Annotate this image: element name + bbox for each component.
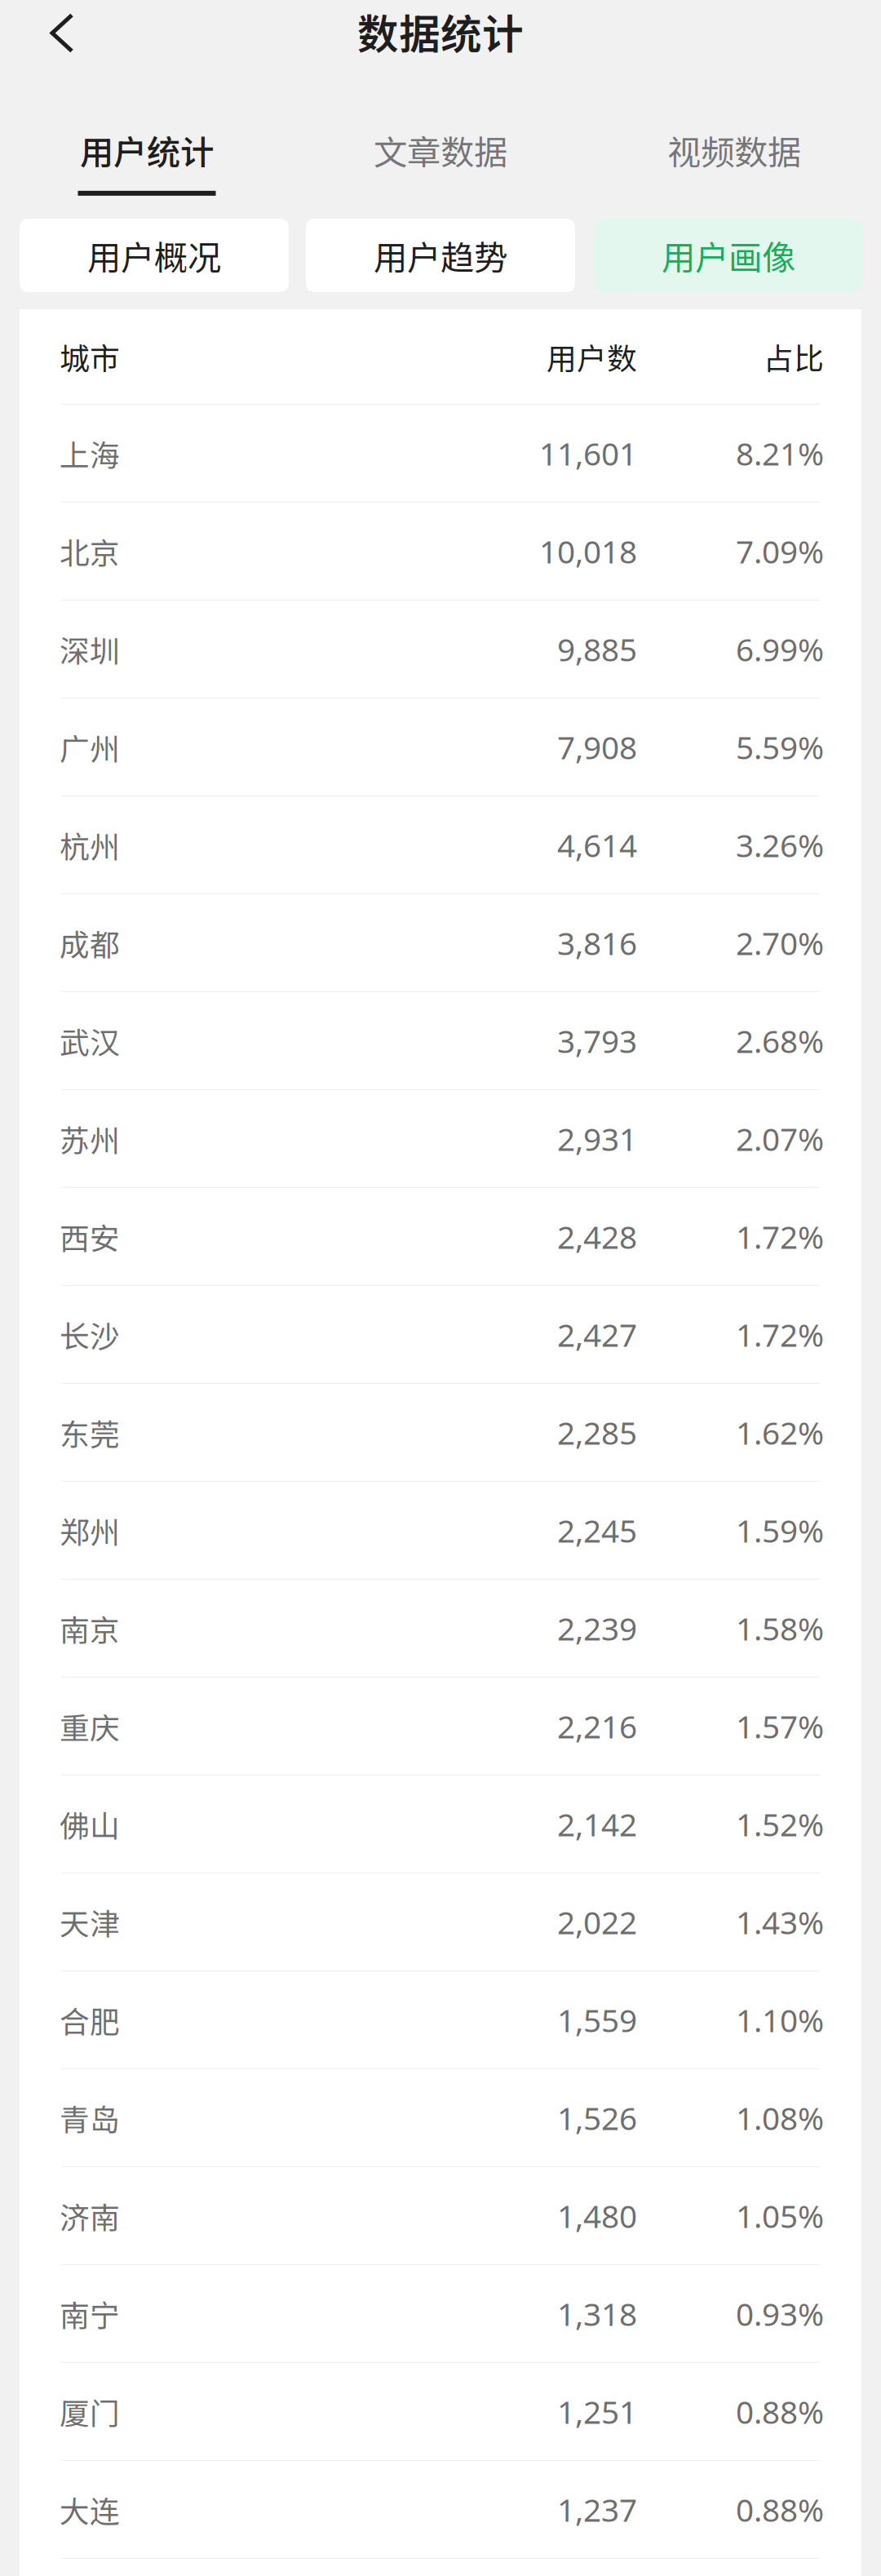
staticText: 济南	[60, 2194, 120, 2237]
button[interactable]: 视频数据	[587, 66, 881, 197]
staticText: 3.26%	[736, 823, 824, 866]
staticText: 1.57%	[736, 1705, 824, 1748]
staticText: 2,285	[557, 1411, 637, 1454]
staticText: 2,216	[557, 1705, 637, 1748]
staticText: 1.10%	[736, 1998, 824, 2041]
staticText: 1,251	[557, 2390, 637, 2433]
staticText: 文章数据	[374, 126, 507, 175]
staticText: 10,018	[539, 530, 637, 573]
staticText: 1.05%	[736, 2194, 824, 2237]
staticText: 佛山	[60, 1802, 120, 1846]
staticText: 5.59%	[736, 726, 824, 769]
staticText: 1.52%	[736, 1803, 824, 1846]
staticText: 青岛	[60, 2096, 120, 2140]
staticText: 1,318	[557, 2292, 637, 2335]
staticText: 武汉	[60, 1019, 120, 1062]
staticText: 重庆	[60, 1705, 120, 1748]
staticText: 1.62%	[736, 1411, 824, 1454]
staticText: 2,427	[557, 1313, 637, 1356]
staticText: 1,480	[557, 2194, 637, 2237]
staticText: 2,022	[557, 1901, 637, 1944]
button[interactable]: 用户概况	[20, 219, 289, 292]
staticText: 2,245	[557, 1509, 637, 1552]
staticText: 3,793	[557, 1019, 637, 1062]
staticText: 9,885	[557, 628, 637, 671]
staticText: 1.08%	[736, 2096, 824, 2139]
staticText: 城市	[60, 335, 120, 378]
staticText: 1.58%	[736, 1607, 824, 1650]
staticText: 用户画像	[662, 231, 795, 280]
staticText: 2,931	[557, 1117, 637, 1160]
button[interactable]: 用户画像	[594, 219, 863, 292]
staticText: 2,428	[557, 1215, 637, 1258]
staticText: 广州	[60, 725, 120, 769]
staticText: 1,526	[557, 2096, 637, 2139]
staticText: 2.70%	[736, 921, 824, 964]
staticText: 苏州	[60, 1117, 120, 1160]
staticText: 7.09%	[736, 530, 824, 573]
staticText: 郑州	[60, 1509, 120, 1552]
staticText: 成都	[60, 921, 120, 965]
staticText: 天津	[60, 1900, 120, 1944]
staticText: 用户趋势	[374, 231, 507, 280]
staticText: 1,237	[557, 2488, 637, 2531]
staticText: 0.88%	[736, 2390, 824, 2433]
staticText: 1.59%	[736, 1509, 824, 1552]
staticText: 0.88%	[736, 2488, 824, 2531]
button[interactable]: 返回	[0, 0, 104, 66]
staticText: 1.43%	[736, 1901, 824, 1944]
staticText: 1,559	[557, 1998, 637, 2041]
staticText: 3,816	[557, 921, 637, 964]
staticText: 2.07%	[736, 1117, 824, 1160]
staticText: 2.68%	[736, 1019, 824, 1062]
staticText: 北京	[60, 530, 120, 573]
staticText: 长沙	[60, 1313, 120, 1356]
staticText: 8.21%	[736, 432, 824, 475]
staticText: 2,142	[557, 1803, 637, 1846]
staticText: 占比	[764, 335, 824, 378]
staticText: 1.72%	[736, 1313, 824, 1356]
staticText: 数据统计	[357, 1, 524, 61]
button[interactable]: 用户趋势	[306, 219, 575, 292]
staticText: 11,601	[539, 432, 637, 475]
staticText: 合肥	[60, 1998, 120, 2042]
staticText: 用户统计	[80, 126, 214, 175]
staticText: 视频数据	[667, 126, 801, 175]
staticText: 南京	[60, 1607, 120, 1650]
staticText: 杭州	[60, 823, 120, 867]
staticText: 上海	[60, 432, 120, 475]
staticText: 6.99%	[736, 628, 824, 671]
staticText: 0.93%	[736, 2292, 824, 2335]
staticText: 厦门	[60, 2390, 120, 2433]
staticText: 东莞	[60, 1411, 120, 1454]
button[interactable]: 用户统计	[0, 66, 294, 197]
staticText: 深圳	[60, 627, 120, 671]
staticText: 用户概况	[87, 231, 221, 280]
staticText: 南宁	[60, 2292, 120, 2335]
staticText: 4,614	[557, 823, 637, 866]
staticText: 7,908	[557, 726, 637, 769]
staticText: 西安	[60, 1215, 120, 1258]
staticText: 大连	[60, 2488, 120, 2531]
staticText: 2,239	[557, 1607, 637, 1650]
button[interactable]: 文章数据	[294, 66, 587, 197]
staticText: 用户数	[547, 335, 637, 378]
staticText: 1.72%	[736, 1215, 824, 1258]
